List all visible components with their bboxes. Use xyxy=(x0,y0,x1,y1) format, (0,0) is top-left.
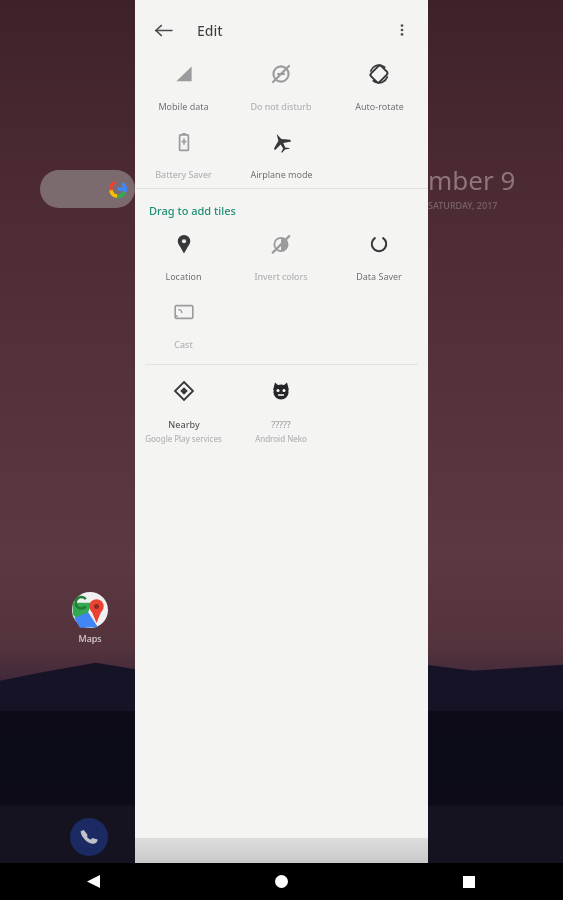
button[interactable]: ????? xyxy=(232,381,330,444)
staticText: Drag to add tiles xyxy=(149,203,236,218)
staticText: Invert colors xyxy=(254,270,308,282)
button[interactable]: Do not disturb xyxy=(232,64,330,112)
staticText: Do not disturb xyxy=(250,100,312,112)
button[interactable]: Mobile data xyxy=(135,64,232,112)
staticText: Location xyxy=(165,270,202,282)
button[interactable]: Back xyxy=(143,10,183,50)
button[interactable]: Recents xyxy=(375,863,563,900)
button[interactable]: Cast xyxy=(135,302,232,350)
button[interactable]: More options xyxy=(382,10,422,50)
staticText: ????? xyxy=(271,418,291,430)
button[interactable]: Google Search xyxy=(40,170,135,208)
staticText: Auto-rotate xyxy=(355,100,404,112)
button[interactable]: Home xyxy=(187,863,375,900)
staticText: Google Play services xyxy=(145,433,222,444)
button[interactable]: Maps xyxy=(62,592,118,644)
staticText: SATURDAY, 2017 xyxy=(428,199,498,211)
staticText: Cast xyxy=(174,338,193,350)
button[interactable]: Nearby xyxy=(135,381,232,444)
staticText: Mobile data xyxy=(158,100,209,112)
staticText: Data Saver xyxy=(356,270,402,282)
button[interactable]: Auto-rotate xyxy=(330,64,428,112)
staticText: mber 9 xyxy=(428,162,516,197)
button[interactable]: Battery Saver xyxy=(135,132,232,180)
staticText: Battery Saver xyxy=(155,168,212,180)
button[interactable]: Location xyxy=(135,234,232,282)
staticText: Nearby xyxy=(168,418,200,430)
button[interactable]: Phone xyxy=(70,818,108,856)
staticText: Edit xyxy=(197,21,223,40)
staticText: Airplane mode xyxy=(250,168,313,180)
button[interactable]: Airplane mode xyxy=(232,132,330,180)
staticText: Maps xyxy=(78,632,102,644)
staticText: Android Neko xyxy=(255,433,307,444)
button[interactable]: Back xyxy=(0,863,187,900)
button[interactable]: Data Saver xyxy=(330,234,428,282)
button[interactable]: Invert colors xyxy=(232,234,330,282)
